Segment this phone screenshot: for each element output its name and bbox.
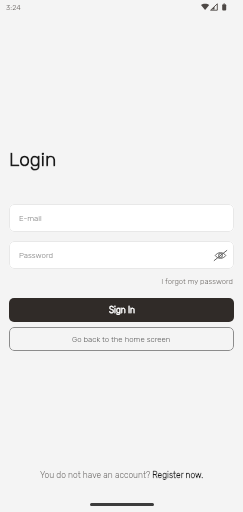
staticText: 3:24	[6, 3, 21, 12]
button[interactable]: Password	[9, 241, 234, 269]
staticText: Login	[9, 148, 57, 171]
button[interactable]: Sign In	[9, 298, 234, 322]
button[interactable]: E-mail	[9, 204, 234, 232]
staticText: Sign In	[109, 305, 135, 315]
staticText: E-mail	[19, 214, 42, 223]
button[interactable]: Go back to the home screen	[9, 327, 234, 351]
button[interactable]: I forgot my password	[0, 277, 233, 286]
staticText: Password	[19, 251, 54, 260]
staticText: Go back to the home screen	[72, 335, 171, 344]
button[interactable]: Show password	[212, 247, 229, 264]
button[interactable]: You do not have an account? Register now…	[40, 470, 204, 480]
